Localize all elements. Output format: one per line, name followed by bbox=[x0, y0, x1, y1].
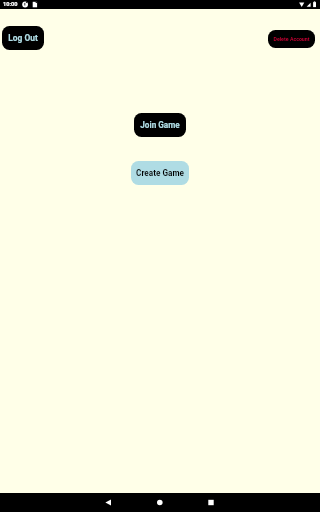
staticText: Delete Account bbox=[273, 36, 310, 42]
staticText: Join Game bbox=[140, 120, 180, 130]
staticText: Create Game bbox=[136, 168, 184, 178]
button[interactable]: Delete Account bbox=[268, 30, 315, 48]
staticText: Log Out bbox=[8, 33, 38, 43]
button[interactable]: Log Out bbox=[2, 26, 44, 50]
button[interactable]: Join Game bbox=[134, 113, 186, 137]
staticText: 10:00 bbox=[3, 1, 18, 8]
button[interactable]: Recent apps bbox=[190, 493, 232, 512]
button[interactable]: Back bbox=[88, 493, 130, 512]
button[interactable]: Create Game bbox=[131, 161, 189, 185]
button[interactable]: Home bbox=[139, 493, 181, 512]
